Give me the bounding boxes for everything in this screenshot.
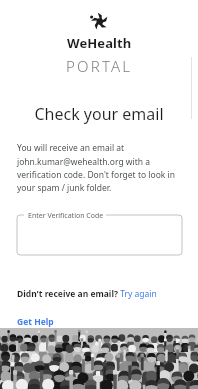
staticText: Try again (118, 288, 157, 300)
staticText: WeHealth (67, 34, 132, 52)
button[interactable]: Get Help (17, 316, 54, 328)
staticText: Didn't receive an email? (17, 288, 118, 300)
staticText: PORTAL (66, 56, 133, 76)
staticText: You will receive an email at john.kumar@… (17, 142, 178, 193)
button[interactable]: Try again (118, 288, 157, 300)
button[interactable]: Enter Verification Code (17, 209, 182, 255)
staticText: Get Help (17, 316, 54, 328)
staticText: Check your email (0, 103, 198, 125)
staticText: Enter Verification Code (28, 211, 104, 221)
